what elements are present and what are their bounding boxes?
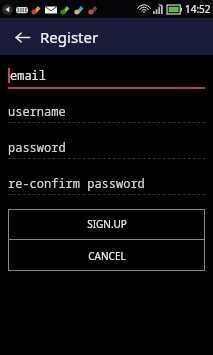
- staticText: re-confirm password: [8, 175, 145, 191]
- staticText: email: [10, 67, 47, 83]
- button[interactable]: password: [8, 135, 205, 159]
- staticText: CANCEL: [88, 249, 126, 263]
- button[interactable]: SIGN.UP: [8, 209, 205, 239]
- button[interactable]: CANCEL: [8, 240, 205, 271]
- staticText: SIGN.UP: [87, 217, 127, 231]
- button[interactable]: email: [8, 61, 205, 89]
- staticText: username: [8, 103, 66, 119]
- staticText: 14:52: [185, 2, 211, 16]
- button[interactable]: Back: [8, 23, 36, 51]
- staticText: Register: [40, 27, 99, 47]
- button[interactable]: re-confirm password: [8, 171, 205, 195]
- staticText: password: [8, 139, 66, 155]
- button[interactable]: username: [8, 99, 205, 123]
